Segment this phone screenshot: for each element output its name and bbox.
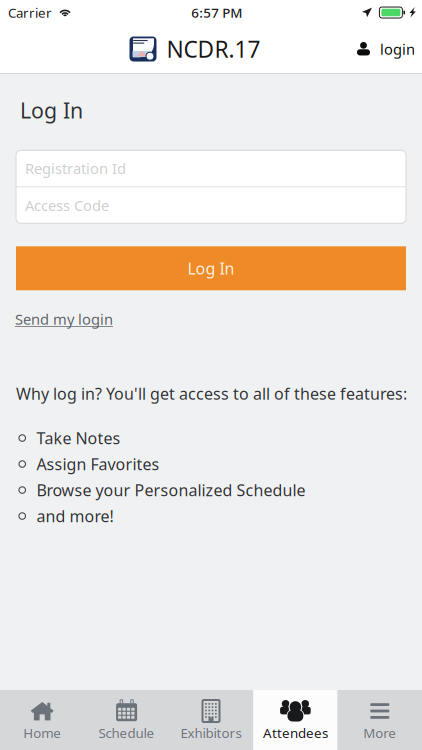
staticText: 6:57 PM: [191, 4, 242, 21]
staticText: Carrier: [8, 4, 52, 21]
staticText: Home: [23, 724, 61, 742]
staticText: Access Code: [25, 196, 109, 215]
staticText: Schedule: [99, 724, 155, 742]
button[interactable]: Home: [0, 690, 84, 750]
button[interactable]: login: [343, 27, 422, 71]
button[interactable]: Schedule: [84, 690, 169, 750]
staticText: More: [363, 724, 396, 742]
staticText: Browse your Personalized Schedule: [36, 479, 305, 501]
staticText: Assign Favorites: [36, 453, 159, 475]
staticText: Why log in? You'll get access to all of …: [16, 383, 407, 404]
button[interactable]: Exhibitors: [169, 690, 253, 750]
staticText: Log In: [187, 258, 234, 279]
staticText: NCDR.17: [166, 34, 260, 64]
button[interactable]: More: [338, 690, 422, 750]
staticText: Log In: [20, 96, 83, 124]
staticText: Take Notes: [36, 427, 120, 449]
button[interactable]: Log In: [16, 246, 406, 290]
staticText: Attendees: [263, 724, 328, 742]
staticText: login: [380, 39, 415, 59]
staticText: Registration Id: [25, 159, 126, 178]
staticText: and more!: [36, 505, 113, 527]
button[interactable]: Send my login: [15, 309, 113, 329]
staticText: Send my login: [15, 309, 113, 329]
button[interactable]: Attendees: [253, 690, 338, 750]
staticText: Exhibitors: [180, 724, 241, 742]
